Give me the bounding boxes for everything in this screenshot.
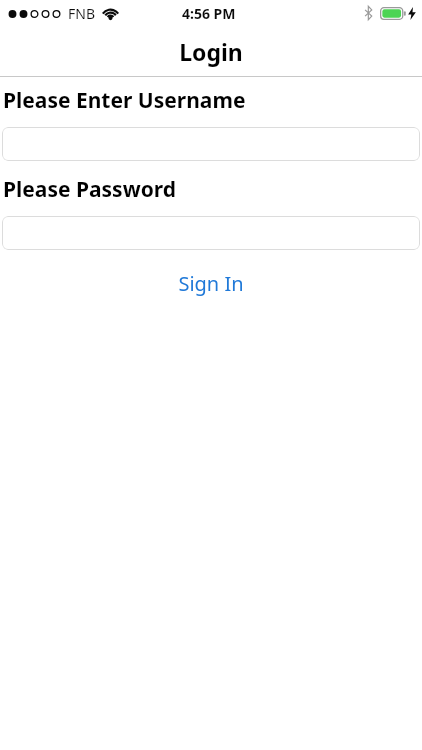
- staticText: Please Password: [3, 175, 176, 204]
- staticText: Login: [179, 36, 243, 67]
- staticText: FNB: [68, 4, 96, 23]
- staticText: 4:56 PM: [182, 4, 236, 23]
- button[interactable]: Sign In: [156, 264, 266, 303]
- button[interactable]: [2, 216, 420, 250]
- button[interactable]: [2, 127, 420, 161]
- staticText: Sign In: [178, 270, 244, 297]
- staticText: Please Enter Username: [3, 86, 246, 115]
